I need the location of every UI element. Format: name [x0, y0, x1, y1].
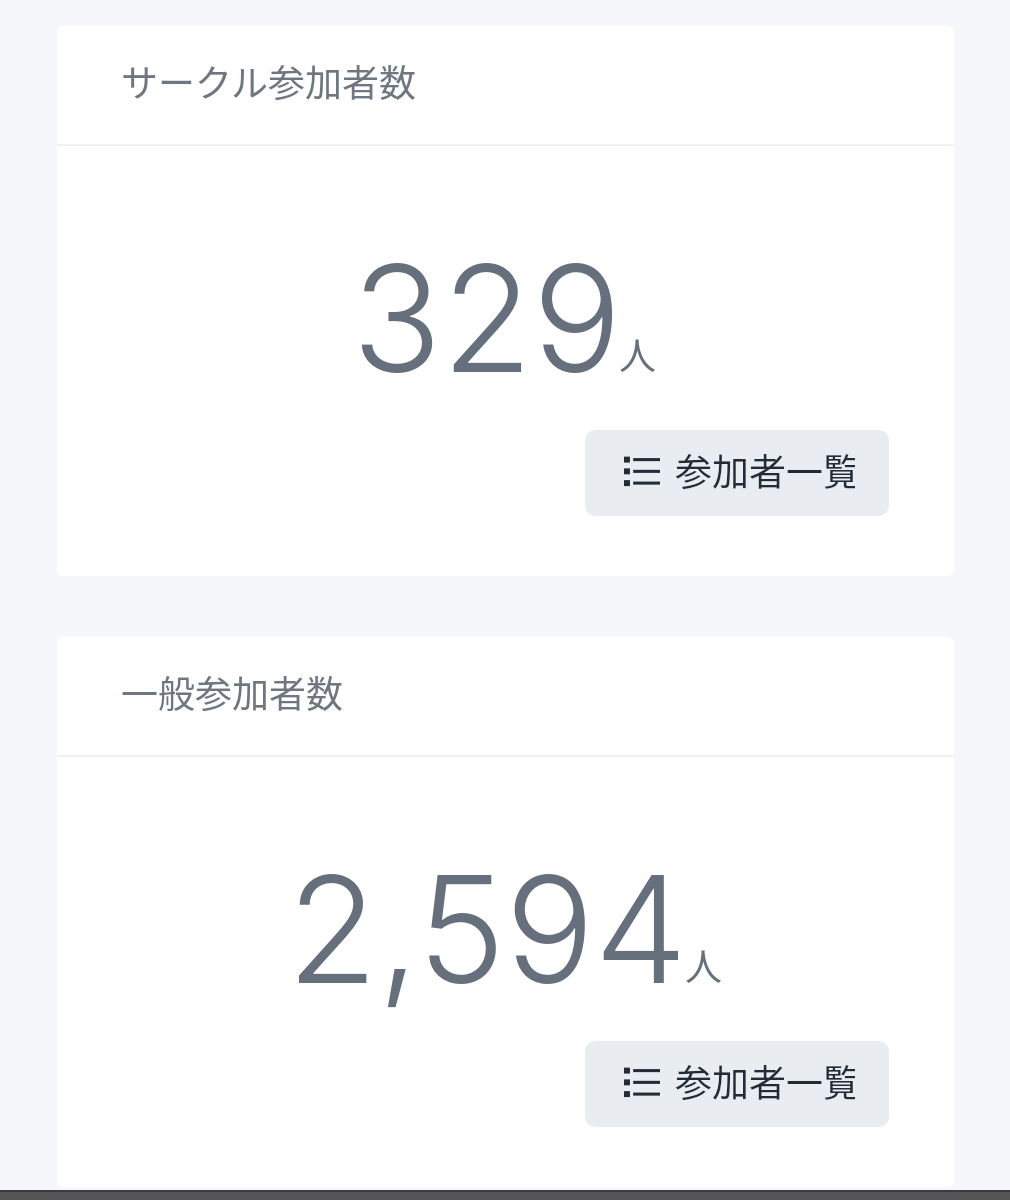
staticText: 一般参加者数 [121, 665, 343, 719]
staticText: 329 [352, 229, 622, 408]
staticText: サークル参加者数 [121, 54, 416, 108]
staticText: 参加者一覧 [675, 443, 855, 497]
staticText: 2,594 [287, 840, 688, 1019]
staticText: 人 [685, 938, 722, 992]
button[interactable]: 参加者一覧 [585, 430, 889, 516]
button[interactable]: 参加者一覧 [585, 1041, 889, 1127]
staticText: 参加者一覧 [675, 1054, 855, 1108]
staticText: 人 [619, 327, 656, 381]
